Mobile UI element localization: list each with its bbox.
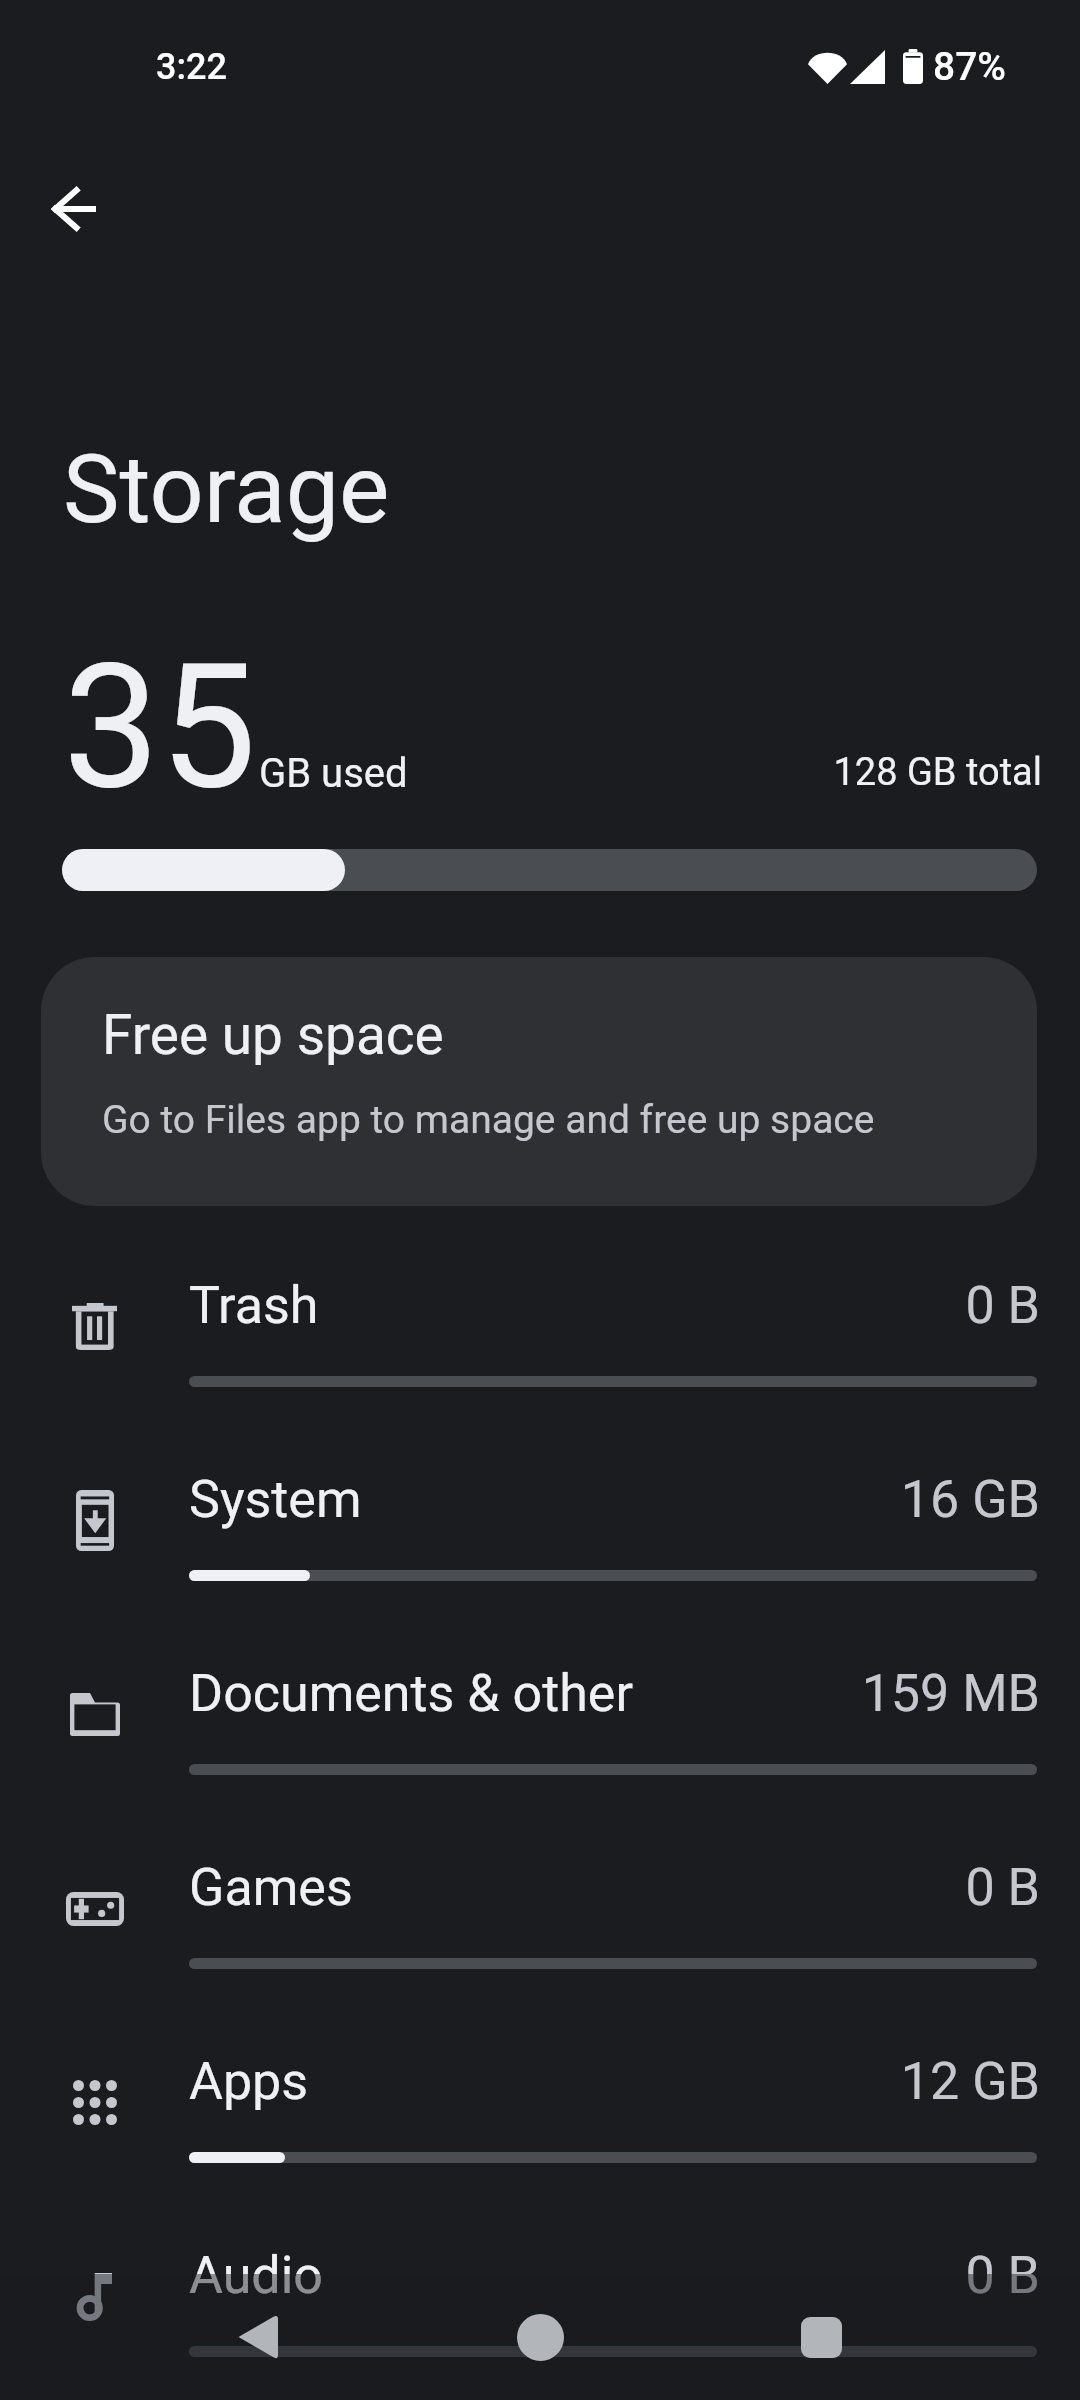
button[interactable]: System [0,1434,1080,1628]
staticText: Apps [189,2051,309,2112]
staticText: Audio [189,2245,323,2306]
button[interactable]: Audio [0,2210,1080,2400]
staticText: 128 GB total [0,750,1042,795]
button[interactable]: Recent apps [776,2292,866,2382]
button[interactable]: Documents & other [0,1628,1080,1822]
staticText: Go to Files app to manage and free up sp… [102,1097,875,1143]
staticText: 16 GB [0,1469,1040,1530]
staticText: GB used [259,750,408,797]
button[interactable]: Back [212,2292,302,2382]
staticText: 0 B [0,2245,1040,2306]
staticText: 3:22 [156,46,227,88]
button[interactable]: Apps [0,2016,1080,2210]
staticText: Documents & other [189,1663,634,1724]
button[interactable]: Trash [0,1240,1080,1434]
staticText: System [189,1469,362,1530]
button[interactable]: Home [495,2292,585,2382]
staticText: 159 MB [0,1663,1040,1724]
button[interactable]: Navigate up [29,164,119,254]
staticText: 87% [933,44,1006,90]
staticText: Free up space [102,1003,444,1067]
staticText: Games [189,1857,353,1918]
staticText: 12 GB [0,2051,1040,2112]
staticText: 0 B [0,1857,1040,1918]
staticText: Trash [189,1275,319,1336]
button[interactable]: Free up space [41,957,1037,1206]
staticText: Storage [63,434,390,545]
button[interactable]: Games [0,1822,1080,2016]
staticText: 0 B [0,1275,1040,1336]
staticText: 35 [63,626,257,828]
